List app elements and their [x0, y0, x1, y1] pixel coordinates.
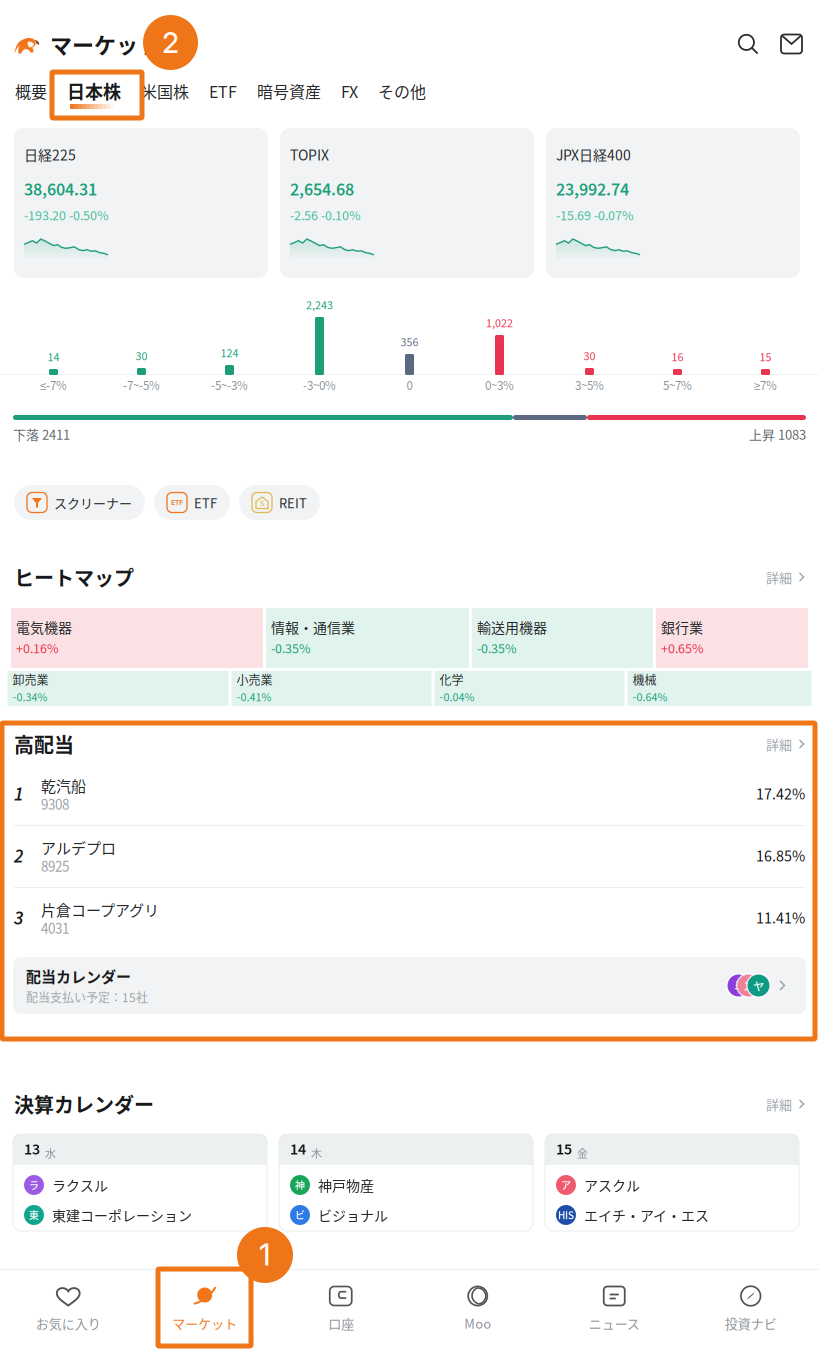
staticText: 3~5%: [575, 377, 604, 395]
button[interactable]: その他: [368, 72, 436, 116]
button[interactable]: メッセージ: [771, 24, 812, 63]
staticText: 暗号資産: [257, 79, 321, 103]
staticText: -2.56 -0.10%: [290, 206, 361, 226]
staticText: 小売業: [236, 671, 272, 688]
button[interactable]: 日本株: [57, 72, 131, 116]
staticText: 下落 2411: [13, 425, 70, 443]
button[interactable]: TOPIX: [280, 128, 534, 278]
staticText: 詳細: [766, 1095, 792, 1113]
staticText: 124: [220, 345, 238, 362]
staticText: 金: [577, 1145, 588, 1161]
button[interactable]: 銀行業: [656, 608, 808, 668]
button[interactable]: お気に入り: [0, 1269, 136, 1350]
staticText: 高配当: [14, 729, 74, 758]
staticText: マーケット: [50, 28, 160, 60]
staticText: +0.65%: [661, 639, 704, 659]
button[interactable]: 小売業: [231, 671, 431, 706]
button[interactable]: 輸送用機器: [472, 608, 653, 668]
staticText: アスクル: [584, 1175, 640, 1195]
staticText: 卸売業: [12, 671, 48, 688]
staticText: Moo: [464, 1314, 491, 1332]
staticText: 11.41%: [756, 907, 805, 930]
staticText: 水: [45, 1145, 56, 1161]
button[interactable]: 投資ナビ: [682, 1269, 819, 1350]
button[interactable]: 機械: [627, 671, 811, 706]
staticText: 8925: [41, 856, 69, 878]
button[interactable]: 2: [0, 826, 819, 887]
button[interactable]: 卸売業: [7, 671, 228, 706]
button[interactable]: 日経225: [14, 128, 268, 278]
staticText: ≤-7%: [40, 377, 67, 395]
staticText: ラ: [29, 1178, 39, 1192]
button[interactable]: Moo: [409, 1269, 546, 1350]
button[interactable]: 13: [13, 1134, 267, 1231]
button[interactable]: 概要: [5, 72, 57, 116]
staticText: 日本株: [67, 78, 121, 104]
staticText: TOPIX: [290, 144, 329, 165]
button[interactable]: JPX日経400: [546, 128, 800, 278]
staticText: その他: [378, 79, 426, 103]
button[interactable]: ETF: [154, 485, 230, 520]
staticText: 輸送用機器: [477, 617, 547, 637]
staticText: 2: [14, 843, 23, 870]
staticText: -15.69 -0.07%: [556, 206, 634, 226]
button[interactable]: 暗号資産: [247, 72, 331, 116]
button[interactable]: スクリーナー: [14, 485, 145, 520]
staticText: ミ: [733, 977, 744, 994]
staticText: 決算カレンダー: [14, 1089, 154, 1118]
staticText: 東: [29, 1208, 39, 1222]
staticText: 3: [14, 905, 23, 932]
staticText: 米国株: [141, 79, 189, 103]
button[interactable]: 口座: [273, 1269, 409, 1350]
button[interactable]: 詳細: [766, 1089, 805, 1119]
staticText: 口座: [328, 1314, 354, 1332]
button[interactable]: 配当カレンダー: [13, 957, 806, 1014]
staticText: 2: [162, 25, 179, 60]
staticText: 4031: [41, 918, 69, 940]
staticText: 1: [14, 781, 23, 808]
button[interactable]: 情報・通信業: [266, 608, 469, 668]
button[interactable]: ニュース: [546, 1269, 682, 1350]
button[interactable]: 14: [279, 1134, 533, 1231]
staticText: -193.20 -0.50%: [24, 206, 109, 226]
button[interactable]: 化学: [434, 671, 624, 706]
staticText: ア: [561, 1178, 571, 1192]
staticText: 0~3%: [485, 377, 514, 395]
staticText: 機械: [632, 671, 656, 688]
button[interactable]: 電気機器: [11, 608, 263, 668]
button[interactable]: マーケット: [136, 1269, 273, 1350]
button[interactable]: ETF: [199, 72, 247, 116]
staticText: ≥7%: [754, 377, 777, 395]
staticText: ETF: [171, 497, 183, 508]
staticText: 電気機器: [16, 617, 72, 637]
button[interactable]: FX: [331, 72, 368, 116]
staticText: -0.35%: [271, 639, 311, 659]
staticText: -0.35%: [477, 639, 517, 659]
button[interactable]: 1: [0, 764, 819, 825]
staticText: 356: [400, 334, 418, 351]
button[interactable]: 3: [0, 888, 819, 949]
staticText: 東建コーポレーション: [52, 1205, 192, 1225]
button[interactable]: 米国株: [131, 72, 199, 116]
button[interactable]: 検索: [727, 23, 769, 65]
button[interactable]: 詳細: [766, 562, 805, 592]
staticText: 木: [311, 1145, 322, 1161]
staticText: 13: [24, 1138, 40, 1161]
staticText: 16.85%: [756, 845, 805, 868]
staticText: 情報・通信業: [271, 617, 355, 637]
staticText: 14: [47, 349, 59, 366]
staticText: 15: [759, 349, 771, 366]
staticText: REIT: [279, 493, 307, 512]
staticText: 2,654.68: [290, 177, 354, 203]
staticText: -0.41%: [236, 689, 271, 706]
button[interactable]: S: [239, 485, 320, 520]
staticText: 14: [290, 1138, 306, 1161]
staticText: +0.16%: [16, 639, 59, 659]
staticText: ビジョナル: [318, 1205, 388, 1225]
button[interactable]: 詳細: [766, 729, 805, 759]
staticText: -3~0%: [303, 377, 336, 395]
button[interactable]: 15: [545, 1134, 799, 1231]
staticText: 30: [135, 348, 147, 365]
staticText: 銀行業: [661, 617, 703, 637]
staticText: 9308: [41, 794, 69, 816]
